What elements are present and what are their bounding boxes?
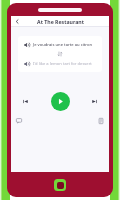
button[interactable]: Notes — [96, 116, 106, 126]
button[interactable]: Home — [54, 179, 66, 191]
other: Play phrase — [23, 60, 30, 67]
button[interactable]: Play phrase — [18, 59, 102, 68]
button[interactable]: Swap languages — [57, 51, 63, 57]
button[interactable]: Play phrase — [18, 40, 102, 49]
button[interactable]: Play — [51, 92, 70, 111]
button[interactable]: Previous — [20, 96, 31, 107]
button[interactable]: Next — [89, 96, 100, 107]
staticText: Je voudrais une tarte au citron — [33, 42, 93, 48]
button[interactable]: Conversation — [14, 116, 24, 126]
staticText: I'd like a lemon tart for dessert — [33, 61, 92, 67]
button[interactable]: Play phrase — [18, 36, 102, 72]
button[interactable]: Back — [13, 17, 22, 26]
other: Play phrase — [23, 41, 30, 48]
staticText: At The Restaurant — [37, 18, 84, 25]
